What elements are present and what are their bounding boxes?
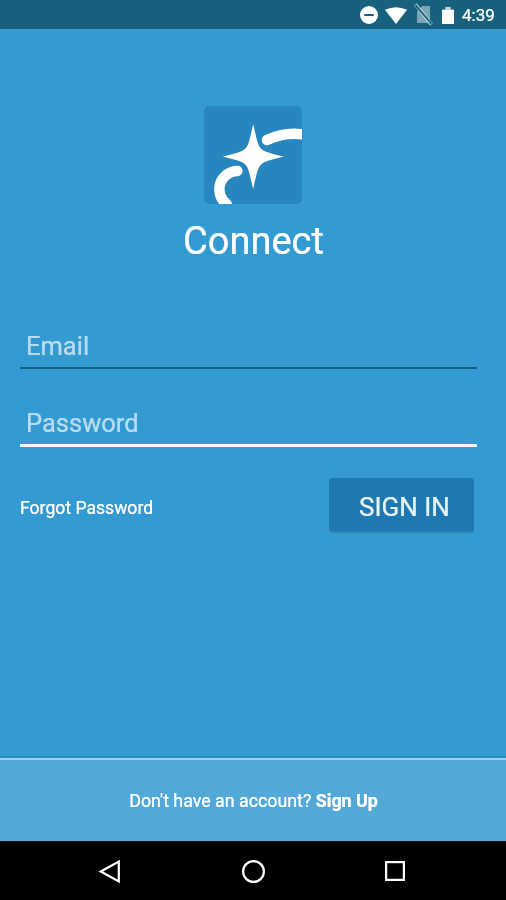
button[interactable] bbox=[20, 402, 477, 449]
staticText: Don't have an account? Sign Up bbox=[129, 790, 378, 811]
button[interactable]: SIGN IN bbox=[329, 478, 474, 531]
button[interactable]: Don't have an account? Sign Up bbox=[0, 760, 506, 841]
staticText: Forgot Password bbox=[20, 498, 154, 519]
staticText: Email bbox=[26, 331, 90, 361]
button[interactable]: Forgot Password bbox=[12, 492, 162, 525]
button[interactable]: Recent apps bbox=[371, 847, 419, 895]
button[interactable]: Back bbox=[86, 847, 134, 895]
staticText: Password bbox=[26, 408, 139, 438]
staticText: Connect bbox=[183, 219, 324, 264]
staticText: 4:39 bbox=[462, 5, 495, 25]
button[interactable]: Home bbox=[229, 847, 277, 895]
button[interactable] bbox=[20, 325, 477, 373]
staticText: SIGN IN bbox=[359, 492, 450, 522]
